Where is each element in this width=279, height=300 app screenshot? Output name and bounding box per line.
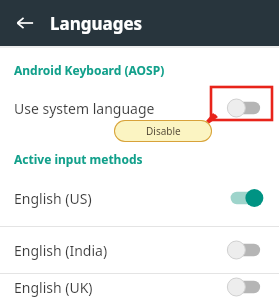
staticText: English (UK) <box>14 278 93 297</box>
button[interactable]: English (US) <box>0 181 279 215</box>
staticText: Languages <box>50 12 143 35</box>
button[interactable]: Back <box>10 8 40 38</box>
staticText: Use system language <box>14 99 155 118</box>
staticText: English (US) <box>14 189 92 208</box>
staticText: Android Keyboard (AOSP) <box>14 62 165 78</box>
button[interactable]: English (India) <box>0 227 279 273</box>
staticText: English (India) <box>14 241 108 260</box>
button[interactable]: Disable <box>114 120 212 142</box>
button[interactable]: Off <box>227 277 263 297</box>
button[interactable]: English (UK) <box>0 274 279 300</box>
button[interactable]: Off <box>227 98 263 118</box>
button[interactable]: On <box>227 188 263 208</box>
staticText: Disable <box>146 124 181 138</box>
button[interactable]: Use system language <box>0 91 279 125</box>
staticText: Active input methods <box>14 151 143 167</box>
button[interactable]: Off <box>227 240 263 260</box>
